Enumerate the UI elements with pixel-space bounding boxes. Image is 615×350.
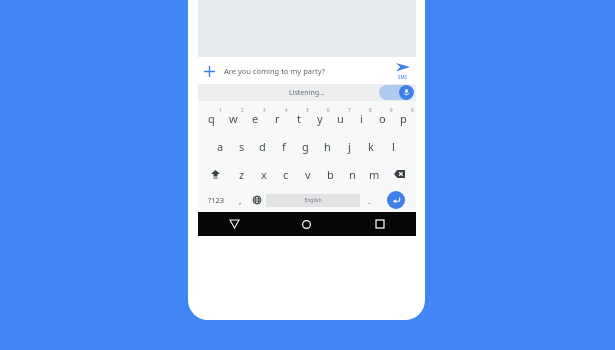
button[interactable]: Back (198, 212, 270, 236)
staticText: s (239, 139, 245, 154)
button[interactable]: d (252, 132, 273, 160)
button[interactable]: Voice input (399, 85, 414, 100)
staticText: SMS (398, 74, 408, 80)
staticText: o (379, 111, 386, 126)
button[interactable]: w (222, 104, 244, 132)
button[interactable]: Enter (387, 191, 405, 209)
staticText: English (304, 197, 322, 204)
staticText: f (282, 139, 286, 154)
staticText: i (360, 111, 363, 126)
staticText: g (302, 139, 309, 154)
staticText: k (368, 139, 374, 154)
staticText: z (239, 167, 245, 182)
staticText: t (297, 111, 301, 126)
button[interactable]: r (266, 104, 288, 132)
button[interactable]: Add attachment (198, 60, 220, 82)
staticText: 7 (348, 107, 351, 113)
staticText: n (349, 167, 356, 182)
staticText: l (392, 139, 395, 154)
staticText: r (275, 111, 280, 126)
button[interactable]: s (231, 132, 252, 160)
button[interactable]: Change language (248, 188, 266, 212)
staticText: d (259, 139, 266, 154)
staticText: Listening... (289, 88, 325, 98)
staticText: ?123 (208, 195, 225, 205)
staticText: Are you coming to my party? (224, 66, 390, 76)
staticText: 4 (285, 107, 288, 113)
button[interactable]: q (200, 104, 222, 132)
staticText: j (348, 139, 351, 154)
button[interactable]: h (316, 132, 338, 160)
staticText: 9 (390, 107, 393, 113)
button[interactable]: v (297, 160, 319, 188)
button[interactable]: l (382, 132, 404, 160)
button[interactable]: e (244, 104, 266, 132)
button[interactable]: i (351, 104, 372, 132)
button[interactable]: Shift (200, 160, 230, 188)
button[interactable]: ?123 (201, 188, 232, 212)
staticText: a (217, 139, 224, 154)
button[interactable]: Home (270, 212, 343, 236)
button[interactable]: Backspace (385, 160, 414, 188)
staticText: x (261, 167, 267, 182)
staticText: q (208, 111, 215, 126)
button[interactable]: n (341, 160, 363, 188)
button[interactable]: Listening... (198, 84, 416, 101)
button[interactable]: m (363, 160, 385, 188)
staticText: y (317, 111, 323, 126)
button[interactable]: g (294, 132, 316, 160)
button[interactable]: y (309, 104, 330, 132)
staticText: p (400, 111, 407, 126)
button[interactable]: , (232, 188, 248, 212)
button[interactable]: c (275, 160, 297, 188)
staticText: b (327, 167, 334, 182)
staticText: e (252, 111, 259, 126)
button[interactable]: z (230, 160, 253, 188)
staticText: 6 (327, 107, 330, 113)
staticText: 8 (369, 107, 372, 113)
staticText: 3 (263, 107, 266, 113)
button[interactable]: b (319, 160, 341, 188)
button[interactable]: Recent apps (343, 212, 416, 236)
staticText: w (229, 111, 238, 126)
button[interactable]: . (360, 188, 378, 212)
staticText: 1 (219, 107, 222, 113)
button[interactable]: j (338, 132, 360, 160)
button[interactable]: x (253, 160, 275, 188)
staticText: 2 (241, 107, 244, 113)
button[interactable]: k (360, 132, 382, 160)
staticText: 5 (306, 107, 309, 113)
button[interactable]: p (393, 104, 414, 132)
button[interactable]: English (266, 194, 360, 207)
staticText: u (337, 111, 344, 126)
staticText: v (305, 167, 311, 182)
staticText: m (369, 167, 380, 182)
button[interactable]: t (288, 104, 309, 132)
button[interactable]: u (330, 104, 351, 132)
staticText: , (239, 194, 242, 206)
staticText: h (324, 139, 331, 154)
button[interactable]: Send SMS (390, 57, 416, 84)
button[interactable]: f (273, 132, 294, 160)
staticText: c (283, 167, 289, 182)
button[interactable]: o (372, 104, 393, 132)
staticText: 0 (411, 107, 414, 113)
staticText: . (368, 194, 371, 206)
button[interactable]: a (210, 132, 231, 160)
